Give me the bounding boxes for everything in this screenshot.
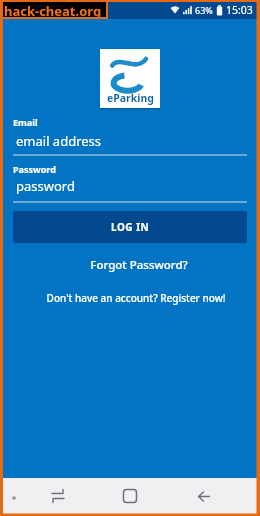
button[interactable]: Forgot Password? bbox=[22, 257, 256, 273]
staticText: LOG IN bbox=[111, 220, 150, 234]
button[interactable]: Don't have an account? Register now! bbox=[19, 291, 253, 305]
button[interactable] bbox=[173, 478, 260, 516]
staticText: Password bbox=[13, 163, 56, 175]
button[interactable] bbox=[0, 478, 86, 516]
staticText: hack-cheat.org bbox=[4, 2, 102, 17]
staticText: eParking bbox=[107, 91, 154, 105]
staticText: password bbox=[16, 177, 75, 195]
button[interactable] bbox=[86, 478, 173, 516]
staticText: 63% bbox=[195, 4, 213, 16]
staticText: Email bbox=[13, 116, 38, 128]
button[interactable]: LOG IN bbox=[13, 211, 247, 243]
staticText: email address bbox=[16, 132, 102, 150]
staticText: 15:03 bbox=[226, 3, 253, 17]
